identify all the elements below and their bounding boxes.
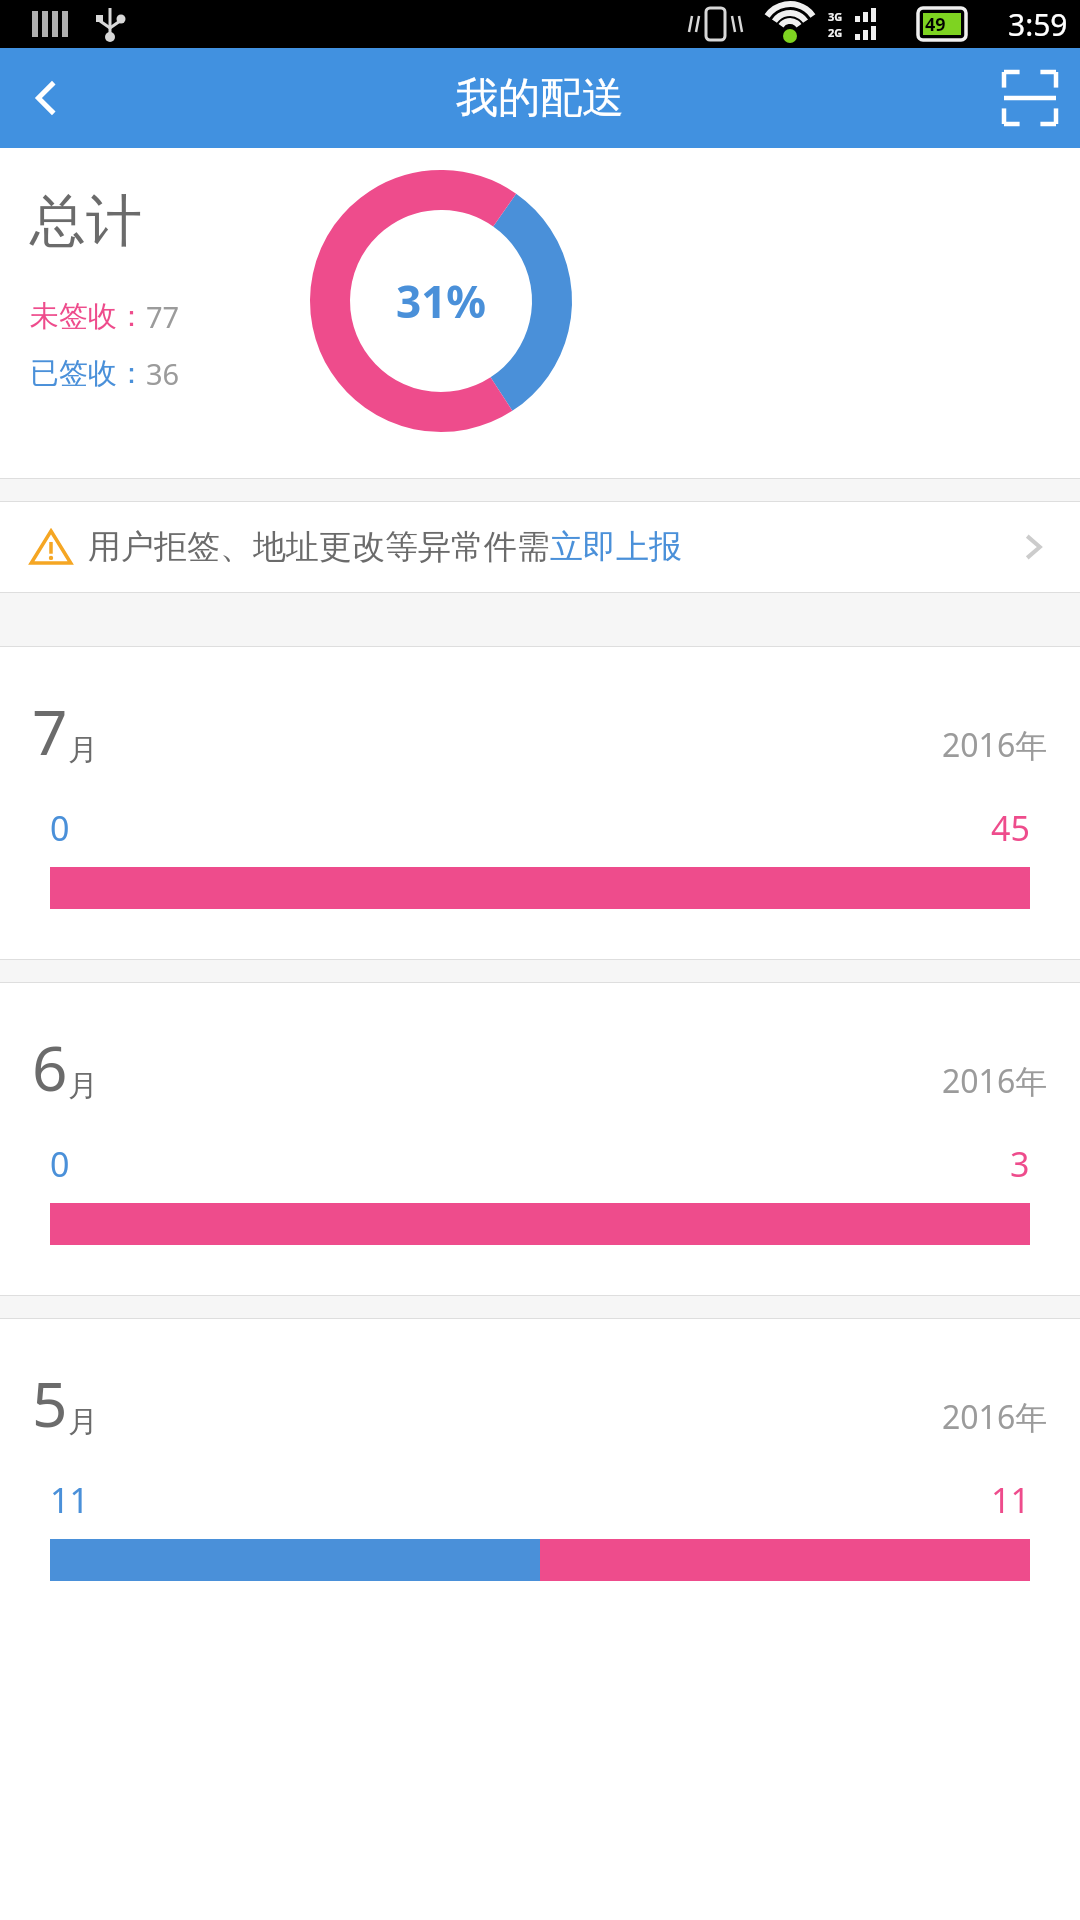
staticText: 5 [32, 1361, 68, 1445]
staticText: ： [117, 355, 146, 392]
staticText: 月 [68, 1403, 98, 1441]
staticText: 我的配送 [456, 72, 624, 125]
staticText: 2G [828, 25, 843, 40]
staticText: 3G [828, 9, 843, 24]
staticText: 2016年 [942, 1059, 1048, 1103]
staticText: 2016年 [942, 1395, 1048, 1439]
button[interactable]: 用户拒签、地址更改等异常件需 [0, 502, 1080, 592]
staticText: 用户拒签、地址更改等异常件需 [88, 526, 550, 568]
staticText: 45 [991, 805, 1030, 851]
button[interactable]: Scan [980, 48, 1080, 148]
staticText: 月 [68, 1067, 98, 1105]
staticText: 未签收 [30, 298, 117, 335]
staticText: ： [117, 298, 146, 335]
staticText: 49 [925, 12, 946, 37]
staticText: 立即上报 [550, 526, 682, 568]
staticText: 7 [32, 689, 68, 773]
staticText: 月 [68, 731, 98, 769]
button[interactable]: Back [0, 50, 96, 146]
staticText: 11 [50, 1477, 89, 1523]
staticText: 3 [1010, 1141, 1030, 1187]
staticText: 6 [32, 1025, 68, 1109]
staticText: 已签收 [30, 355, 117, 392]
staticText: 3:59 [1008, 4, 1068, 45]
staticText: 36 [146, 354, 180, 393]
staticText: 总计 [30, 186, 142, 257]
staticText: 11 [991, 1477, 1030, 1523]
staticText: 0 [50, 1141, 70, 1187]
staticText: 31% [396, 271, 487, 331]
staticText: 2016年 [942, 723, 1048, 767]
staticText: 77 [146, 297, 180, 336]
staticText: 0 [50, 805, 70, 851]
